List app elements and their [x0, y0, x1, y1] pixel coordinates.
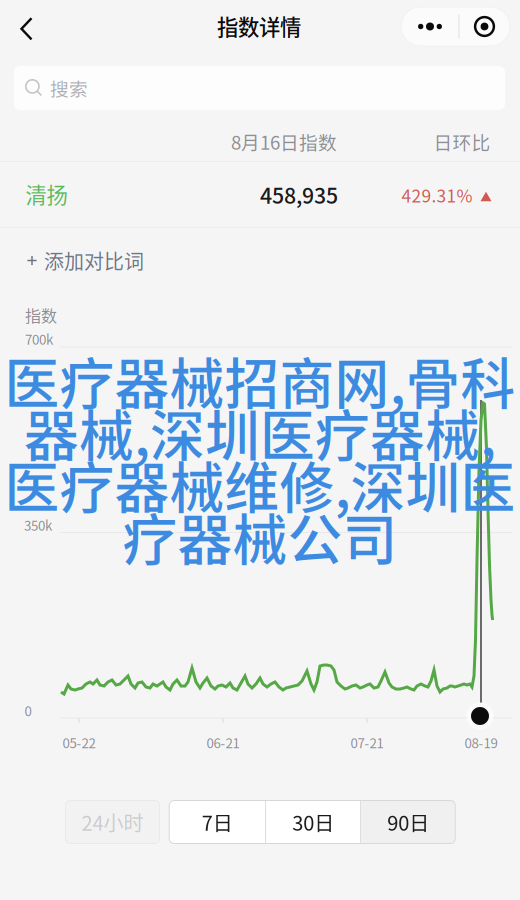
staticText: 医疗器械维修,深圳医 [4, 444, 515, 524]
staticText: 07-21 [350, 733, 383, 752]
button[interactable]: 30日 [266, 800, 360, 843]
button[interactable]: More options [401, 7, 459, 46]
button[interactable]: 搜索 [14, 66, 505, 110]
button[interactable]: Close mini program [459, 7, 510, 46]
staticText: 指数详情 [217, 11, 301, 41]
staticText: 搜索 [50, 74, 88, 101]
staticText: 24小时 [81, 807, 143, 836]
staticText: 429.31% [401, 182, 472, 208]
staticText: 清扬 [25, 179, 67, 209]
staticText: 05-22 [62, 733, 95, 752]
staticText: 8月16日指数 [231, 128, 337, 155]
staticText: 医疗器械招商网,骨科 [4, 340, 515, 420]
button[interactable]: 7日 [169, 800, 265, 843]
staticText: 06-21 [206, 733, 239, 752]
staticText: 0 [24, 701, 31, 720]
staticText: 08-19 [464, 733, 497, 752]
staticText: 7日 [202, 807, 233, 836]
button[interactable]: 添加对比词 [21, 232, 181, 288]
staticText: 指数 [25, 303, 57, 327]
staticText: 700k [25, 329, 53, 349]
button[interactable]: 90日 [361, 800, 455, 843]
button[interactable]: 24小时 [65, 800, 159, 843]
staticText: 30日 [292, 807, 334, 836]
staticText: 疗器械公司 [122, 496, 397, 576]
staticText: 458,935 [260, 179, 338, 210]
button[interactable]: Back [4, 7, 48, 51]
staticText: 器械,深圳医疗器械, [24, 392, 496, 472]
staticText: 90日 [387, 807, 429, 836]
staticText: 添加对比词 [44, 246, 144, 275]
staticText: 日环比 [433, 128, 490, 155]
staticText: 350k [24, 515, 52, 535]
